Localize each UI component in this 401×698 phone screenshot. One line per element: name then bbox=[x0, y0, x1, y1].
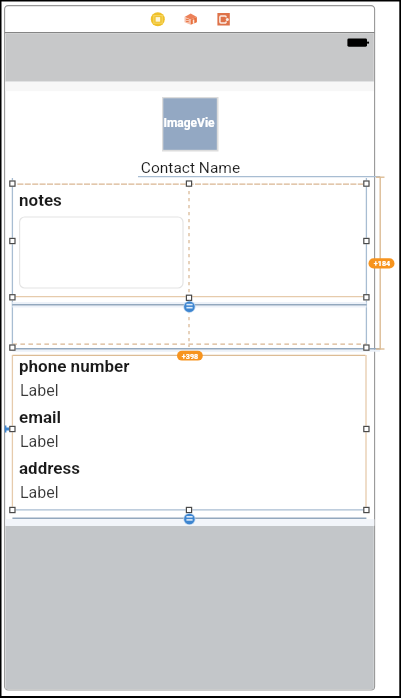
staticText: Label bbox=[20, 381, 59, 400]
staticText: email bbox=[19, 407, 62, 427]
staticText: notes bbox=[19, 190, 62, 210]
button[interactable]: Blueprint view bbox=[181, 9, 199, 27]
staticText: Label bbox=[20, 483, 59, 502]
button[interactable]: Contact Name bbox=[138, 158, 243, 177]
staticText: +184 bbox=[369, 259, 395, 267]
staticText: ImageVie bbox=[162, 116, 216, 130]
staticText: Label bbox=[20, 432, 59, 451]
staticText: phone number bbox=[19, 356, 130, 376]
button[interactable]: Design view bbox=[148, 9, 166, 27]
staticText: +398 bbox=[177, 352, 203, 360]
button[interactable]: ImageVie bbox=[163, 98, 217, 150]
button[interactable]: Device screen bbox=[214, 9, 232, 27]
staticText: Contact Name bbox=[138, 159, 243, 177]
staticText: address bbox=[19, 458, 80, 478]
